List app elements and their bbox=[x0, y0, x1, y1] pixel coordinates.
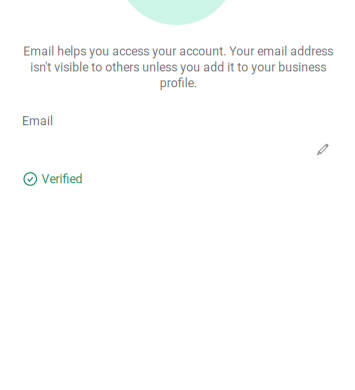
staticText: Verified bbox=[41, 172, 82, 186]
staticText: Email bbox=[22, 114, 53, 128]
button[interactable]: Edit email bbox=[0, 110, 355, 172]
staticText: Email helps you access your account. You… bbox=[23, 44, 333, 90]
